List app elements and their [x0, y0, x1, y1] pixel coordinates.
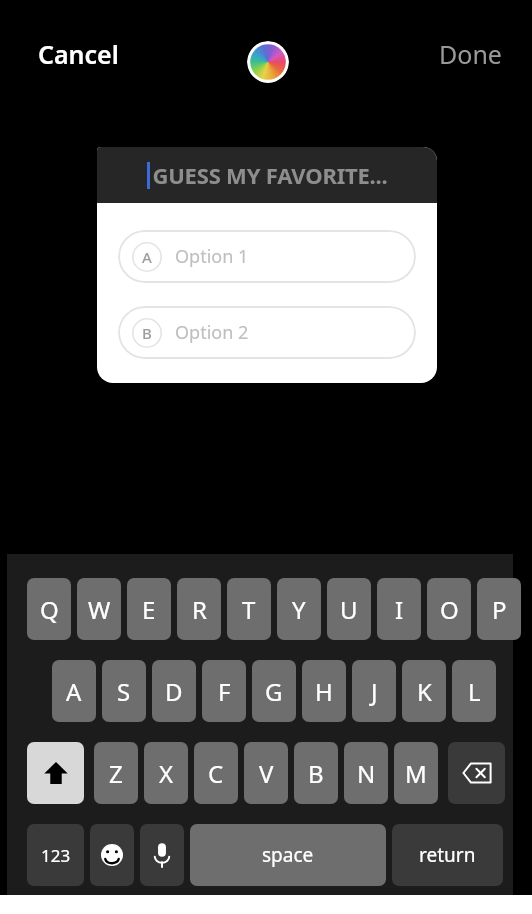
button[interactable]: W	[77, 578, 121, 640]
staticText: C	[208, 757, 224, 790]
button[interactable]: S	[102, 660, 146, 722]
button[interactable]: A	[52, 660, 96, 722]
staticText: A	[66, 675, 82, 708]
button[interactable]: C	[194, 742, 238, 804]
button[interactable]: K	[402, 660, 446, 722]
button[interactable]: J	[352, 660, 396, 722]
staticText: B	[308, 757, 324, 790]
button[interactable]: A	[118, 230, 416, 283]
button[interactable]: Cancel	[30, 33, 127, 75]
button[interactable]: D	[152, 660, 196, 722]
button[interactable]: P	[477, 578, 521, 640]
staticText: B	[142, 323, 152, 343]
staticText: X	[159, 757, 174, 790]
button[interactable]: V	[244, 742, 288, 804]
button[interactable]: 123	[27, 824, 84, 886]
staticText: I	[395, 593, 404, 626]
button[interactable]: Done	[431, 33, 510, 75]
staticText: M	[405, 757, 427, 790]
staticText: V	[259, 757, 274, 790]
staticText: Cancel	[38, 37, 119, 71]
button[interactable]: X	[144, 742, 188, 804]
button[interactable]: N	[344, 742, 388, 804]
staticText: U	[340, 593, 358, 626]
button[interactable]: Shift	[27, 742, 84, 804]
button[interactable]: R	[177, 578, 221, 640]
staticText: S	[117, 675, 131, 708]
button[interactable]: Z	[94, 742, 138, 804]
button[interactable]: Q	[27, 578, 71, 640]
staticText: Option 1	[175, 244, 249, 269]
button[interactable]: U	[327, 578, 371, 640]
staticText: T	[242, 593, 256, 626]
button[interactable]: H	[302, 660, 346, 722]
button[interactable]: M	[394, 742, 438, 804]
button[interactable]: Y	[277, 578, 321, 640]
staticText: Q	[40, 593, 59, 626]
staticText: W	[88, 593, 111, 626]
button[interactable]: E	[127, 578, 171, 640]
staticText: D	[165, 675, 183, 708]
staticText: 123	[41, 844, 71, 867]
staticText: K	[417, 675, 432, 708]
staticText: Done	[439, 37, 502, 71]
button[interactable]: B	[118, 306, 416, 359]
button[interactable]: L	[452, 660, 496, 722]
button[interactable]: I	[377, 578, 421, 640]
staticText: Z	[109, 757, 123, 790]
staticText: O	[440, 593, 459, 626]
staticText: E	[142, 593, 156, 626]
staticText: Option 2	[175, 320, 249, 345]
button[interactable]: O	[427, 578, 471, 640]
staticText: N	[357, 757, 376, 790]
staticText: P	[492, 593, 507, 626]
staticText: GUESS MY FAVORITE...	[152, 160, 388, 190]
button[interactable]: Text color	[247, 41, 289, 83]
button[interactable]: Voice input	[140, 824, 184, 886]
staticText: return	[419, 842, 476, 868]
button[interactable]: F	[202, 660, 246, 722]
button[interactable]: B	[294, 742, 338, 804]
button[interactable]: space	[190, 824, 386, 886]
button[interactable]: T	[227, 578, 271, 640]
staticText: R	[192, 593, 207, 626]
staticText: H	[315, 675, 333, 708]
button[interactable]: G	[252, 660, 296, 722]
button[interactable]: Emoji	[90, 824, 134, 886]
staticText: G	[265, 675, 283, 708]
staticText: L	[468, 675, 481, 708]
staticText: J	[371, 675, 378, 708]
staticText: space	[262, 842, 314, 868]
staticText: F	[218, 675, 231, 708]
button[interactable]: GUESS MY FAVORITE...	[97, 147, 437, 383]
staticText: A	[142, 247, 152, 267]
button[interactable]: return	[392, 824, 503, 886]
button[interactable]: Backspace	[448, 742, 505, 804]
staticText: Y	[292, 593, 306, 626]
